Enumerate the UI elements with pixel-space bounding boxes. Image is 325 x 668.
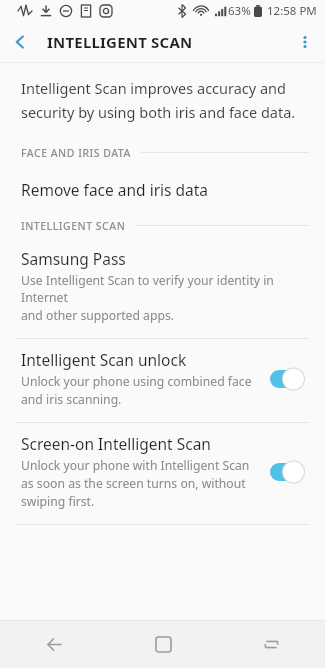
button[interactable]: Home — [109, 621, 217, 668]
staticText: as soon as the screen turns on, without — [21, 475, 246, 492]
button[interactable]: Recent apps — [217, 621, 325, 668]
staticText: 12:58 PM — [267, 3, 317, 19]
staticText: INTELLIGENT SCAN — [21, 219, 126, 233]
staticText: Unlock your phone with Intelligent Scan — [21, 457, 250, 474]
staticText: INTELLIGENT SCAN — [47, 32, 193, 52]
staticText: Screen-on Intelligent Scan — [21, 433, 211, 454]
button[interactable]: Navigate up — [0, 22, 40, 62]
staticText: Use Intelligent Scan to verify your iden… — [21, 272, 304, 306]
staticText: swiping first. — [21, 493, 95, 510]
staticText: and iris scanning. — [21, 391, 122, 408]
button[interactable]: Toggle on — [270, 367, 310, 391]
button[interactable]: Back — [0, 621, 109, 668]
button[interactable]: Remove face and iris data — [0, 166, 325, 212]
staticText: 63% — [228, 3, 251, 19]
button[interactable]: Samsung Pass — [0, 239, 325, 338]
staticText: security by using both iris and face dat… — [21, 102, 296, 122]
button[interactable]: Intelligent Scan unlock — [0, 339, 325, 422]
staticText: Intelligent Scan improves accuracy and — [21, 78, 287, 98]
staticText: Intelligent Scan unlock — [21, 349, 187, 370]
staticText: and other supported apps. — [21, 307, 175, 324]
button[interactable]: Toggle on — [270, 460, 310, 484]
staticText: Remove face and iris data — [21, 179, 209, 200]
button[interactable]: More options — [285, 22, 325, 62]
staticText: Unlock your phone using combined face — [21, 373, 252, 390]
staticText: FACE AND IRIS DATA — [21, 146, 131, 160]
button[interactable]: Screen-on Intelligent Scan — [0, 423, 325, 524]
staticText: Samsung Pass — [21, 248, 126, 269]
